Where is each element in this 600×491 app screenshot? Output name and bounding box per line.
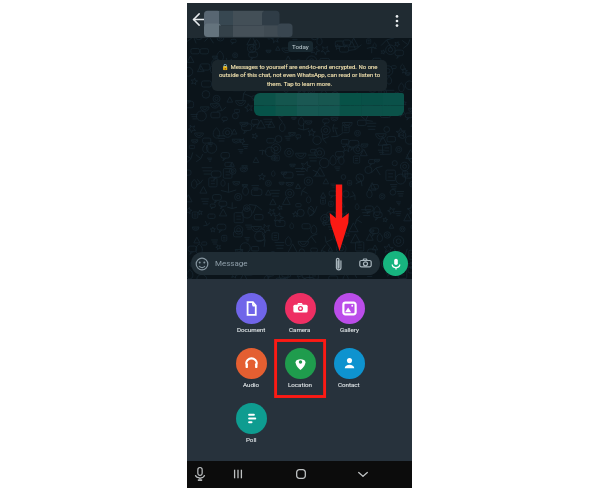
button[interactable]: Home [292, 465, 310, 483]
staticText: Camera [289, 326, 311, 333]
button[interactable]: Gallery [324, 293, 374, 337]
button[interactable]: Contact [324, 348, 374, 392]
staticText: Audio [243, 381, 259, 388]
button[interactable]: Back [354, 465, 372, 483]
button[interactable]: Back [190, 9, 211, 30]
staticText: Poll [246, 436, 257, 443]
button[interactable]: Voice message [383, 251, 408, 276]
staticText: Contact [338, 381, 360, 388]
button[interactable]: Attach [331, 256, 347, 272]
staticText: Gallery [340, 326, 359, 333]
button[interactable]: Location [275, 348, 325, 392]
button[interactable]: Document [226, 293, 276, 337]
button[interactable]: Message [191, 252, 380, 275]
button[interactable]: 🔒 Messages to yourself are end-to-end en… [212, 60, 387, 91]
button[interactable]: Voice input [191, 465, 209, 483]
button[interactable]: More options [388, 12, 406, 30]
button[interactable]: Today [288, 41, 313, 52]
staticText: 🔒 Messages to yourself are end-to-end en… [215, 63, 384, 88]
button[interactable]: Recent apps [229, 465, 247, 483]
button[interactable]: Audio [226, 348, 276, 392]
staticText: Today [292, 43, 309, 50]
button[interactable]: Poll [226, 403, 276, 447]
button[interactable]: Camera [358, 256, 373, 271]
staticText: Document [237, 326, 266, 333]
staticText: Message [215, 259, 248, 268]
staticText: Location [288, 381, 312, 388]
button[interactable]: Camera [275, 293, 325, 337]
